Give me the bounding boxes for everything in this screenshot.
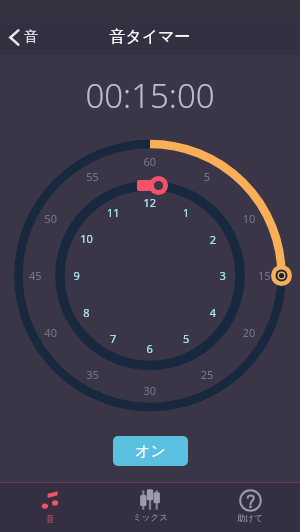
button[interactable]: Timer dial bbox=[0, 0, 300, 532]
button[interactable]: 助けて bbox=[200, 483, 300, 532]
staticText: ミックス bbox=[133, 512, 168, 523]
staticText: 音 bbox=[24, 28, 38, 46]
button[interactable]: 音 bbox=[0, 483, 100, 532]
button[interactable]: ミックス bbox=[100, 483, 200, 532]
staticText: オン bbox=[135, 442, 166, 461]
button[interactable]: オン bbox=[113, 436, 188, 466]
staticText: 音タイマー bbox=[109, 27, 191, 47]
staticText: 助けて bbox=[237, 513, 263, 524]
staticText: 00:15:00 bbox=[85, 73, 215, 118]
staticText: 音 bbox=[46, 514, 55, 525]
button[interactable]: 音 bbox=[0, 24, 48, 50]
